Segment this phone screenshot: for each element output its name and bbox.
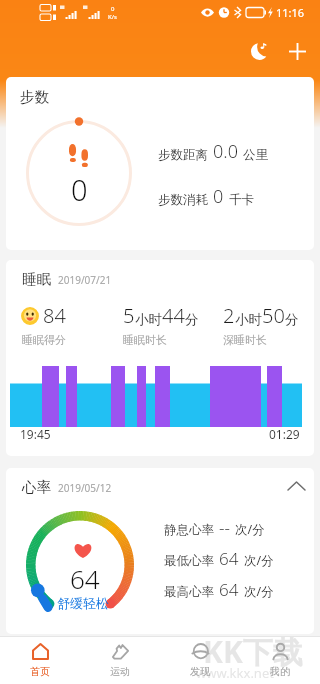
staticText: 步数 [20, 88, 49, 106]
staticText: 我的 [270, 665, 290, 678]
staticText: 2019/07/21 [58, 273, 112, 287]
staticText: 64 [70, 561, 100, 596]
staticText: 最低心率 [164, 553, 214, 569]
staticText: 小时 [235, 311, 262, 328]
staticText: 0 [213, 184, 224, 209]
staticText: 舒缓轻松 [57, 595, 109, 611]
staticText: 2019/05/12 [58, 481, 112, 495]
staticText: 01:29 [269, 426, 300, 442]
button[interactable]: 首页 [0, 637, 80, 684]
staticText: 0 [111, 5, 115, 13]
staticText: 64 [219, 547, 239, 570]
staticText: 深睡时长 [223, 333, 267, 347]
staticText: 50 [262, 302, 285, 329]
staticText: 运动 [110, 665, 130, 678]
staticText: 次/分 [235, 521, 265, 538]
staticText: 19:45 [20, 426, 51, 442]
staticText: 发现 [190, 665, 210, 678]
button[interactable]: 步数 [6, 77, 314, 250]
button[interactable]: 运动 [80, 637, 160, 684]
staticText: 11:16 [276, 5, 305, 20]
staticText: 次/分 [244, 552, 274, 569]
staticText: www.kkx.net [196, 664, 274, 682]
staticText: 次/分 [244, 583, 274, 600]
button[interactable]: 睡眠 [6, 260, 314, 456]
staticText: 静息心率 [164, 522, 214, 538]
staticText: KK下载 [203, 631, 303, 672]
staticText: 5 [123, 302, 135, 329]
staticText: 64 [219, 578, 239, 601]
staticText: 心率 [22, 478, 51, 496]
staticText: 步数距离 [158, 147, 208, 163]
button[interactable]: 发现 [160, 637, 240, 684]
staticText: 84 [43, 302, 66, 329]
button[interactable]: 心率 [6, 468, 314, 634]
staticText: 44 [162, 302, 185, 329]
button[interactable]: Sleep mode [242, 34, 276, 68]
staticText: 睡眠 [22, 270, 51, 288]
staticText: 2 [223, 302, 235, 329]
staticText: 分 [285, 311, 299, 328]
staticText: 0.0 [213, 139, 238, 164]
staticText: 最高心率 [164, 584, 214, 600]
staticText: 分 [185, 311, 199, 328]
button[interactable]: 我的 [240, 637, 320, 684]
staticText: 小时 [135, 311, 162, 328]
staticText: 0 [71, 170, 88, 209]
button[interactable]: Collapse [278, 468, 314, 504]
staticText: 睡眠得分 [22, 333, 66, 347]
button[interactable]: Add [280, 34, 314, 68]
staticText: 千卡 [229, 192, 254, 208]
staticText: K/s [108, 13, 117, 21]
staticText: 步数消耗 [158, 192, 208, 208]
staticText: 公里 [243, 147, 268, 163]
staticText: -- [219, 516, 230, 539]
staticText: 首页 [30, 665, 50, 678]
staticText: 睡眠时长 [123, 333, 167, 347]
